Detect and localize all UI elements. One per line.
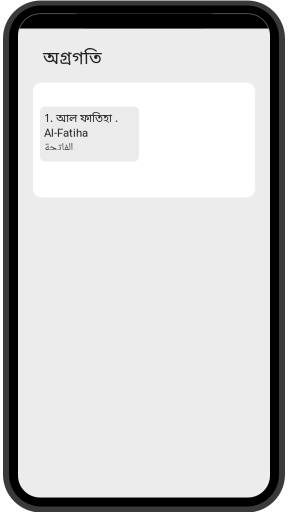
- staticText: الفاتحة: [44, 138, 73, 158]
- button[interactable]: 1. আল ফাতিহা .: [40, 106, 139, 161]
- staticText: অগ্রগতি: [43, 48, 102, 71]
- staticText: 1. আল ফাতিহা .: [44, 111, 118, 126]
- staticText: Al-Fatiha: [44, 126, 88, 140]
